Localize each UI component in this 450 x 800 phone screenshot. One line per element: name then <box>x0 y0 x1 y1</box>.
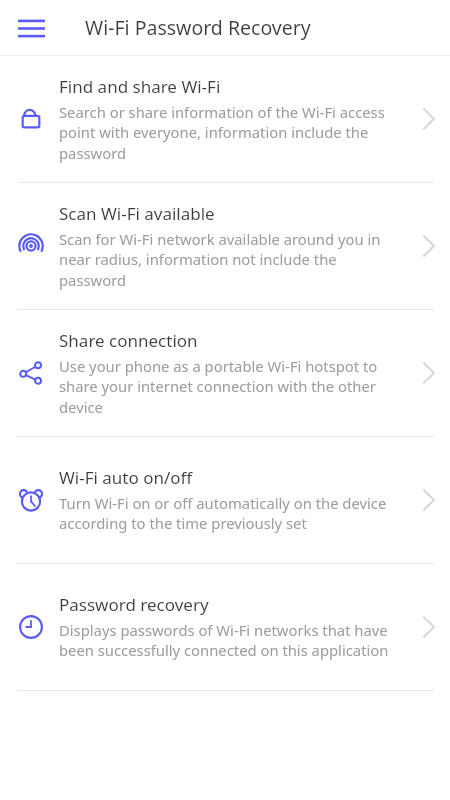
staticText: Wi-Fi Password Recovery <box>85 14 311 41</box>
button[interactable]: Share connection <box>0 310 450 436</box>
staticText: Find and share Wi-Fi <box>59 75 221 98</box>
button[interactable]: Wi-Fi auto on/off <box>0 437 450 563</box>
staticText: Scan Wi-Fi available <box>59 202 215 225</box>
button[interactable]: Password recovery <box>0 564 450 690</box>
button[interactable]: Open navigation menu <box>9 6 53 50</box>
staticText: Share connection <box>59 329 198 352</box>
staticText: Wi-Fi auto on/off <box>59 466 193 489</box>
staticText: Use your phone as a portable Wi-Fi hotsp… <box>59 356 402 418</box>
staticText: Displays passwords of Wi-Fi networks tha… <box>59 620 402 661</box>
staticText: Password recovery <box>59 593 209 616</box>
staticText: Turn Wi-Fi on or off automatically on th… <box>59 493 402 534</box>
staticText: Search or share information of the Wi-Fi… <box>59 102 402 164</box>
button[interactable]: Scan Wi-Fi available <box>0 183 450 309</box>
staticText: Scan for Wi-Fi network available around … <box>59 229 402 291</box>
button[interactable]: Find and share Wi-Fi <box>0 56 450 182</box>
